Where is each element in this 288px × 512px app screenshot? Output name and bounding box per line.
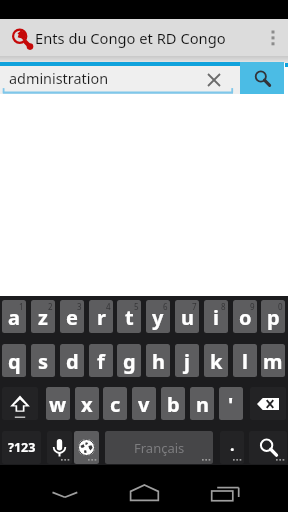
staticText: t: [125, 304, 134, 331]
staticText: ': [228, 391, 234, 418]
button[interactable]: w: [46, 387, 70, 420]
staticText: z: [38, 304, 48, 331]
button[interactable]: Delete: [250, 387, 286, 420]
button[interactable]: d: [60, 344, 84, 377]
button[interactable]: l: [233, 344, 257, 377]
staticText: n: [196, 391, 209, 418]
staticText: 1: [19, 301, 24, 312]
button[interactable]: e: [60, 300, 84, 333]
button[interactable]: u: [175, 300, 199, 333]
staticText: c: [110, 391, 121, 418]
button[interactable]: c: [103, 387, 127, 420]
staticText: p: [267, 304, 280, 331]
staticText: .: [230, 434, 235, 456]
staticText: 9: [250, 301, 255, 312]
staticText: 3: [77, 301, 82, 312]
button[interactable]: g: [117, 344, 141, 377]
button[interactable]: p: [261, 300, 285, 333]
staticText: 5: [134, 301, 139, 312]
button[interactable]: j: [175, 344, 199, 377]
staticText: u: [181, 304, 194, 331]
staticText: h: [152, 348, 165, 375]
staticText: Ents du Congo et RD Congo: [35, 28, 226, 48]
button[interactable]: Shift: [2, 387, 38, 420]
staticText: g: [123, 348, 136, 375]
button[interactable]: Period: [220, 431, 244, 464]
button[interactable]: Space: [105, 431, 213, 464]
button[interactable]: s: [31, 344, 55, 377]
staticText: l: [242, 348, 248, 375]
staticText: 0: [278, 301, 283, 312]
button[interactable]: Clear query: [201, 67, 227, 93]
staticText: e: [66, 304, 78, 331]
staticText: Français: [134, 439, 185, 457]
staticText: administration: [9, 69, 109, 89]
staticText: 7: [192, 301, 197, 312]
button[interactable]: i: [204, 300, 228, 333]
button[interactable]: k: [204, 344, 228, 377]
button[interactable]: Change language: [74, 431, 99, 464]
button[interactable]: n: [190, 387, 214, 420]
staticText: o: [239, 304, 252, 331]
button[interactable]: ': [219, 387, 243, 420]
staticText: y: [152, 304, 164, 331]
staticText: x: [81, 391, 93, 418]
staticText: k: [210, 348, 223, 375]
staticText: 2: [48, 301, 53, 312]
staticText: w: [49, 391, 67, 418]
button[interactable]: Search: [240, 62, 284, 94]
staticText: s: [38, 348, 49, 375]
button[interactable]: y: [146, 300, 170, 333]
staticText: f: [97, 348, 105, 375]
staticText: m: [263, 348, 283, 375]
button[interactable]: Voice input: [47, 431, 72, 464]
button[interactable]: Hide keyboard: [40, 465, 90, 512]
staticText: 6: [163, 301, 168, 312]
button[interactable]: o: [233, 300, 257, 333]
button[interactable]: v: [132, 387, 156, 420]
staticText: ?123: [8, 439, 36, 456]
button[interactable]: m: [261, 344, 285, 377]
button[interactable]: b: [161, 387, 185, 420]
button[interactable]: Search: [249, 431, 287, 464]
button[interactable]: h: [146, 344, 170, 377]
button[interactable]: Home: [120, 465, 170, 512]
staticText: d: [66, 348, 79, 375]
button[interactable]: Recent apps: [200, 465, 250, 512]
staticText: j: [184, 348, 190, 375]
staticText: b: [167, 391, 180, 418]
button[interactable]: t: [117, 300, 141, 333]
staticText: q: [8, 348, 21, 375]
button[interactable]: f: [89, 344, 113, 377]
staticText: v: [138, 391, 150, 418]
button[interactable]: x: [75, 387, 99, 420]
button[interactable]: More options: [258, 19, 288, 56]
button[interactable]: Symbols: [2, 431, 41, 464]
button[interactable]: q: [2, 344, 26, 377]
button[interactable]: a: [2, 300, 26, 333]
staticText: a: [8, 304, 20, 331]
button[interactable]: z: [31, 300, 55, 333]
staticText: 8: [221, 301, 226, 312]
button[interactable]: r: [89, 300, 113, 333]
staticText: 4: [106, 301, 111, 312]
staticText: r: [97, 304, 106, 331]
staticText: i: [213, 304, 219, 331]
